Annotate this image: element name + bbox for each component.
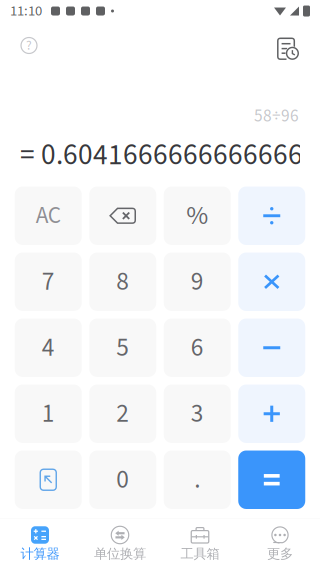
staticText: 工具箱 [180, 545, 219, 562]
button[interactable] [238, 384, 305, 443]
button[interactable]: % [164, 186, 231, 245]
staticText: 3 [191, 396, 204, 432]
staticText: 4 [42, 330, 55, 366]
button[interactable]: 6 [164, 318, 231, 377]
button[interactable]: 单位换算 [80, 518, 160, 568]
button[interactable]: 计算器 [0, 518, 80, 568]
staticText: 1 [42, 396, 55, 432]
button[interactable] [238, 186, 305, 245]
staticText: 7 [42, 264, 55, 300]
staticText: . [194, 462, 200, 498]
staticText: 2 [116, 396, 129, 432]
button[interactable]: AC [15, 186, 82, 245]
button[interactable]: 更多 [240, 518, 320, 568]
staticText: 9 [191, 264, 204, 300]
button[interactable]: 0 [89, 450, 156, 509]
button[interactable] [15, 450, 82, 509]
staticText: 11:10 [10, 1, 42, 21]
button[interactable]: 8 [89, 252, 156, 311]
staticText: 单位换算 [94, 545, 146, 562]
staticText: ? [26, 36, 32, 55]
button[interactable]: 2 [89, 384, 156, 443]
button[interactable]: 工具箱 [160, 518, 240, 568]
staticText: AC [36, 199, 61, 232]
button[interactable]: 7 [15, 252, 82, 311]
button[interactable] [238, 450, 305, 509]
button[interactable]: 4 [15, 318, 82, 377]
staticText: 更多 [267, 545, 293, 562]
button[interactable]: . [164, 450, 231, 509]
button[interactable]: History [268, 29, 308, 69]
staticText: 6 [191, 330, 204, 366]
staticText: % [186, 197, 208, 235]
staticText: 58÷96 [254, 104, 299, 128]
staticText: 计算器 [20, 545, 59, 562]
staticText: 5 [116, 330, 129, 366]
button[interactable] [238, 318, 305, 377]
button[interactable] [238, 252, 305, 311]
staticText: 8 [116, 264, 129, 300]
staticText: = 0.6041666666666666 [20, 134, 303, 176]
button[interactable]: Help [9, 29, 49, 69]
button[interactable]: 9 [164, 252, 231, 311]
button[interactable]: 3 [164, 384, 231, 443]
button[interactable]: 5 [89, 318, 156, 377]
staticText: 0 [116, 462, 129, 498]
button[interactable]: 1 [15, 384, 82, 443]
button[interactable] [89, 186, 156, 245]
